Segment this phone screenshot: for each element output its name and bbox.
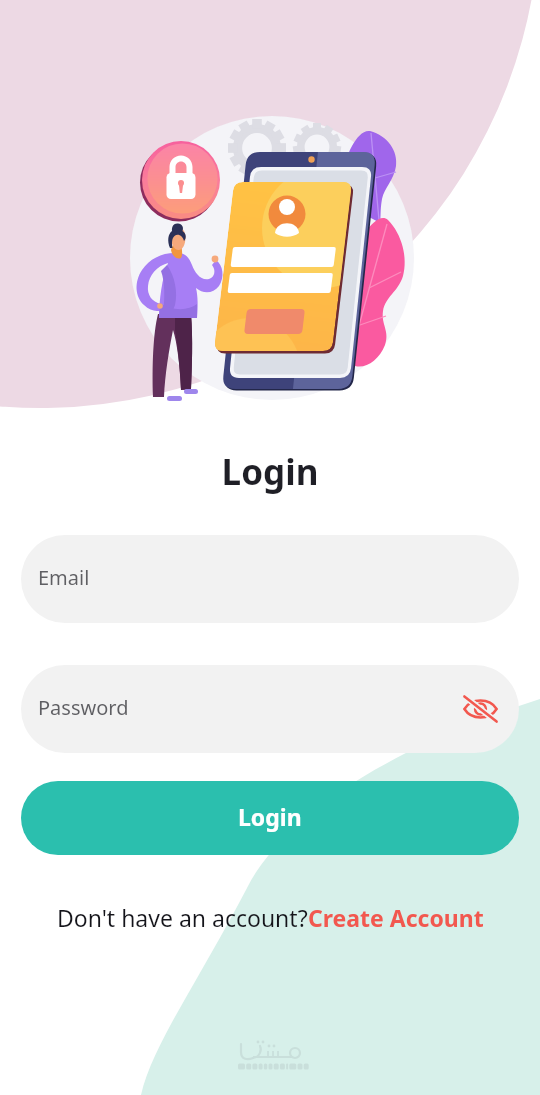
- button[interactable]: Show password: [457, 686, 503, 732]
- staticText: Email: [38, 564, 90, 591]
- staticText: Create Account: [308, 902, 484, 933]
- staticText: Login: [0, 448, 540, 496]
- button[interactable]: Login: [21, 781, 519, 855]
- staticText: Login: [238, 801, 302, 832]
- staticText: Don't have an account?: [57, 902, 308, 933]
- button[interactable]: Create Account: [308, 902, 484, 933]
- button[interactable]: Email: [21, 535, 519, 623]
- button[interactable]: Password: [21, 665, 519, 753]
- staticText: Password: [38, 694, 129, 721]
